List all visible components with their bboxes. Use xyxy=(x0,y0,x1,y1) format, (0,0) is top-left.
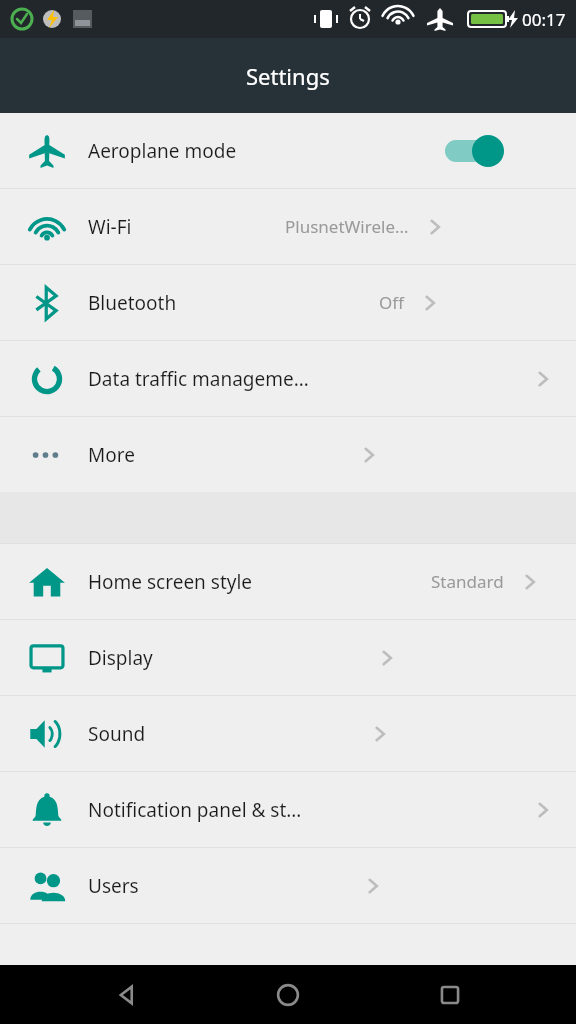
button[interactable]: Home screen style xyxy=(0,544,576,619)
staticText: Bluetooth xyxy=(88,290,177,316)
button[interactable]: Notification panel & status bar xyxy=(0,772,576,847)
button[interactable]: Display xyxy=(0,620,576,695)
button[interactable]: Bluetooth xyxy=(0,265,576,340)
staticText: Display xyxy=(88,645,153,671)
staticText: Home screen style xyxy=(88,569,253,595)
staticText: 00:17 xyxy=(522,8,566,31)
staticText: Wi-Fi xyxy=(88,214,132,240)
staticText: Settings xyxy=(246,61,330,91)
button[interactable]: Data traffic management xyxy=(0,341,576,416)
staticText: Standard xyxy=(431,570,504,593)
button[interactable]: Back xyxy=(90,965,162,1024)
button[interactable]: Users xyxy=(0,848,576,923)
staticText: Users xyxy=(88,873,139,899)
button[interactable]: Sound xyxy=(0,696,576,771)
button[interactable]: More xyxy=(0,417,576,492)
staticText: Sound xyxy=(88,721,146,747)
button[interactable]: Home xyxy=(252,965,324,1024)
staticText: Data traffic management xyxy=(88,366,309,392)
button[interactable]: Recents xyxy=(414,965,486,1024)
staticText: Notification panel & status bar xyxy=(88,797,309,823)
button[interactable]: Wi-Fi xyxy=(0,189,576,264)
button[interactable] xyxy=(441,134,507,168)
staticText: Off xyxy=(379,291,404,314)
staticText: More xyxy=(88,442,135,468)
button[interactable]: Aeroplane mode xyxy=(0,113,576,188)
staticText: Aeroplane mode xyxy=(88,138,237,164)
staticText: PlusnetWirele… xyxy=(285,215,409,238)
